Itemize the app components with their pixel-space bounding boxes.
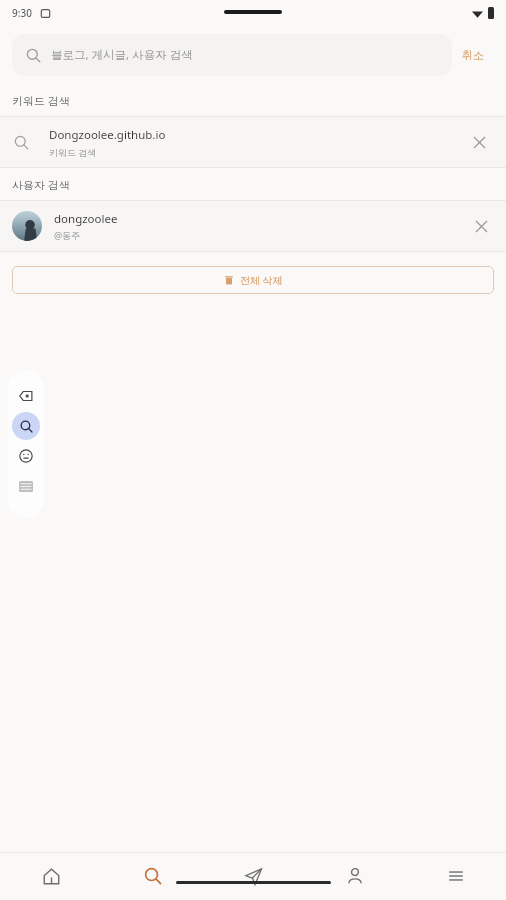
button[interactable]: Search (12, 412, 40, 440)
button[interactable]: Menu (405, 852, 506, 900)
button[interactable]: Home (0, 852, 102, 900)
button[interactable]: Dongzoolee.github.io (0, 116, 506, 168)
button[interactable]: 취소 (452, 40, 494, 70)
staticText: 키워드 검색 (12, 93, 70, 108)
staticText: 취소 (462, 48, 484, 62)
button[interactable]: Back (12, 382, 40, 410)
button[interactable]: 전체 삭제 (12, 266, 494, 294)
staticText: dongzoolee (54, 211, 118, 227)
button[interactable]: 블로그, 게시글, 사용자 검색 (12, 34, 452, 76)
button[interactable]: Keyboard (12, 472, 40, 500)
staticText: 전체 삭제 (240, 273, 283, 287)
button[interactable]: Remove keyword (466, 129, 492, 155)
staticText: 9:30 (12, 6, 32, 20)
staticText: 키워드 검색 (49, 146, 97, 158)
staticText: @동주 (54, 229, 81, 241)
staticText: 블로그, 게시글, 사용자 검색 (51, 47, 193, 63)
button[interactable]: Profile (304, 852, 405, 900)
button[interactable]: Remove user (468, 213, 494, 239)
button[interactable]: dongzoolee (0, 200, 506, 252)
staticText: 사용자 검색 (12, 177, 70, 192)
button[interactable]: Search (102, 852, 203, 900)
staticText: Dongzoolee.github.io (49, 127, 166, 143)
button[interactable]: Emoji (12, 442, 40, 470)
button[interactable]: Send (203, 852, 304, 900)
